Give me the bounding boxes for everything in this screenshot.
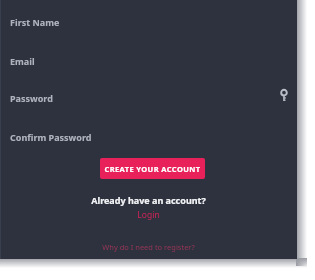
- staticText: Login: [137, 209, 160, 221]
- staticText: First Name: [10, 16, 60, 28]
- staticText: Already have an account?: [91, 194, 206, 206]
- button[interactable]: Show password: [274, 86, 294, 106]
- button[interactable]: Confirm Password: [0, 129, 297, 145]
- button[interactable]: First Name: [0, 14, 297, 30]
- staticText: CREATE YOUR ACCOUNT: [104, 164, 201, 174]
- button[interactable]: Login: [128, 208, 168, 221]
- button[interactable]: Password: [0, 90, 297, 106]
- button[interactable]: Email: [0, 53, 297, 69]
- staticText: Password: [10, 92, 53, 104]
- button[interactable]: CREATE YOUR ACCOUNT: [100, 158, 205, 179]
- button[interactable]: Why do I need to register?: [95, 241, 202, 253]
- staticText: Why do I need to register?: [102, 242, 195, 252]
- staticText: Confirm Password: [10, 131, 92, 143]
- staticText: Email: [10, 55, 35, 67]
